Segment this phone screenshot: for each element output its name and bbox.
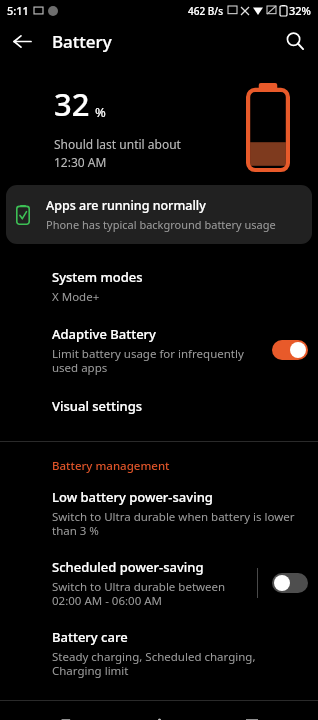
staticText: Steady charging, Scheduled charging, Cha… <box>52 649 304 678</box>
button[interactable]: Scheduled power-saving <box>0 554 318 612</box>
staticText: System modes <box>52 268 143 286</box>
staticText: Phone has typical background battery usa… <box>46 217 276 232</box>
staticText: 32% <box>289 3 311 18</box>
button[interactable]: Battery care <box>0 624 318 682</box>
staticText: Limit battery usage for infrequently use… <box>52 346 260 375</box>
staticText: Low battery power-saving <box>52 488 213 506</box>
staticText: 32 <box>54 83 90 125</box>
button[interactable]: Apps are running normally <box>6 185 312 244</box>
staticText: Battery management <box>52 458 170 474</box>
staticText: Scheduled power-saving <box>52 558 204 576</box>
staticText: % <box>95 103 106 121</box>
button[interactable]: Visual settings <box>0 393 318 419</box>
staticText: 5:11 <box>7 3 29 18</box>
button[interactable]: Search <box>272 21 318 61</box>
button[interactable]: Adaptive Battery <box>0 321 318 379</box>
staticText: Battery <box>52 30 112 53</box>
staticText: Adaptive Battery <box>52 325 156 343</box>
staticText: Should last until about <box>54 136 181 152</box>
staticText: Battery care <box>52 628 128 646</box>
button[interactable]: Low battery power-saving <box>0 484 318 542</box>
staticText: Visual settings <box>52 397 143 415</box>
staticText: 12:30 AM <box>54 154 107 170</box>
staticText: Switch to Ultra durable when battery is … <box>52 509 304 538</box>
staticText: Switch to Ultra durable between 02:00 AM… <box>52 579 226 608</box>
button[interactable]: System modes <box>0 264 318 309</box>
button[interactable]: Adaptive Battery <box>270 337 310 363</box>
button[interactable]: Back <box>0 21 44 61</box>
button[interactable]: Scheduled power-saving <box>270 570 310 596</box>
staticText: Power optimization <box>52 719 160 720</box>
staticText: 462 B/s <box>188 4 224 18</box>
staticText: X Mode+ <box>52 289 100 305</box>
staticText: Apps are running normally <box>46 197 206 214</box>
